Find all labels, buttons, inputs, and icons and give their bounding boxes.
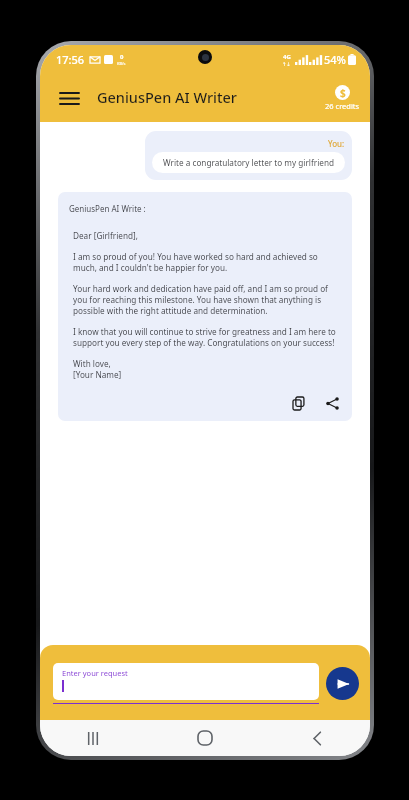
button[interactable]: Share	[321, 392, 343, 414]
staticText: Write a congratulatory letter to my girl…	[163, 157, 334, 168]
staticText: ↑↓	[282, 61, 291, 67]
staticText: KB/s	[117, 61, 126, 66]
staticText: You:	[328, 138, 345, 149]
button[interactable]: Recents	[78, 723, 108, 753]
staticText: Your hard work and dedication have paid …	[73, 283, 343, 316]
staticText: I am so proud of you! You have worked so…	[73, 251, 343, 273]
staticText: [Your Name]	[73, 369, 122, 380]
button[interactable]: Home	[190, 723, 220, 753]
staticText: 0	[120, 53, 124, 61]
button[interactable]: Back	[302, 723, 332, 753]
staticText: GeniusPen AI Writer	[97, 87, 237, 107]
staticText: 54%	[324, 52, 346, 67]
button[interactable]: Enter your request	[53, 663, 319, 704]
staticText: 4G	[283, 53, 291, 61]
staticText: I know that you will continue to strive …	[73, 326, 343, 348]
button[interactable]: GeniusPen AI Write :	[58, 192, 352, 421]
button[interactable]: You:	[145, 131, 352, 180]
button[interactable]: Copy	[288, 392, 310, 414]
button[interactable]: $	[325, 85, 360, 111]
button[interactable]: Send	[326, 667, 359, 700]
staticText: GeniusPen AI Write :	[69, 203, 146, 214]
staticText: 26 credits	[325, 101, 360, 111]
button[interactable]: Menu	[54, 83, 84, 113]
staticText: $	[340, 86, 346, 100]
staticText: Dear [Girlfriend],	[73, 230, 138, 241]
staticText: Enter your request	[62, 668, 128, 678]
staticText: With love,	[73, 358, 111, 369]
staticText: 17:56	[56, 52, 85, 67]
